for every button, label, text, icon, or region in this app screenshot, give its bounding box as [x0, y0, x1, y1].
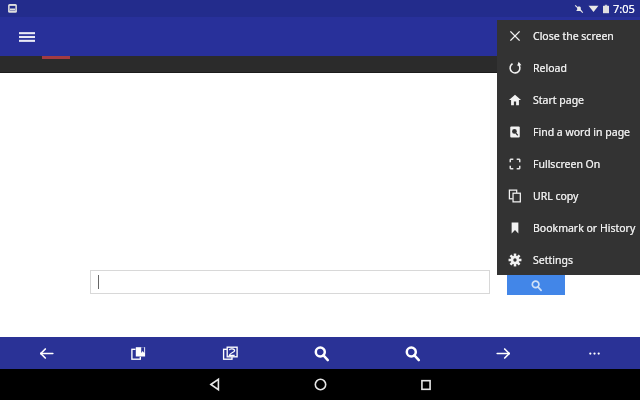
button[interactable]: Back [161, 369, 267, 400]
button[interactable]: Home [267, 369, 373, 400]
button[interactable]: Close the screen [497, 20, 640, 52]
staticText: Bookmark or History [533, 221, 636, 235]
staticText: Find a word in page [533, 125, 631, 139]
button[interactable]: Forward [458, 337, 549, 369]
button[interactable]: More options [549, 337, 640, 369]
button[interactable]: Back [0, 337, 92, 369]
staticText: 7:05 [613, 1, 635, 16]
button[interactable]: Recents [373, 369, 479, 400]
button[interactable]: Menu [10, 20, 44, 54]
button[interactable]: Bookmark or History [497, 212, 640, 244]
button[interactable]: Start page [497, 84, 640, 116]
button[interactable] [90, 270, 490, 294]
staticText: Fullscreen On [533, 157, 601, 171]
button[interactable]: Fullscreen On [497, 148, 640, 180]
button[interactable]: Find [276, 337, 367, 369]
button[interactable]: Search [367, 337, 458, 369]
staticText: Reload [533, 61, 567, 75]
button[interactable]: Settings [497, 244, 640, 275]
staticText: Settings [533, 253, 573, 267]
button[interactable]: Tabs [184, 337, 276, 369]
staticText: Start page [533, 93, 585, 107]
button[interactable]: Search [507, 275, 565, 295]
button[interactable]: Bookmarks [92, 337, 184, 369]
button[interactable]: Reload [497, 52, 640, 84]
staticText: URL copy [533, 189, 579, 203]
button[interactable]: Find a word in page [497, 116, 640, 148]
staticText: Close the screen [533, 29, 614, 43]
button[interactable]: URL copy [497, 180, 640, 212]
